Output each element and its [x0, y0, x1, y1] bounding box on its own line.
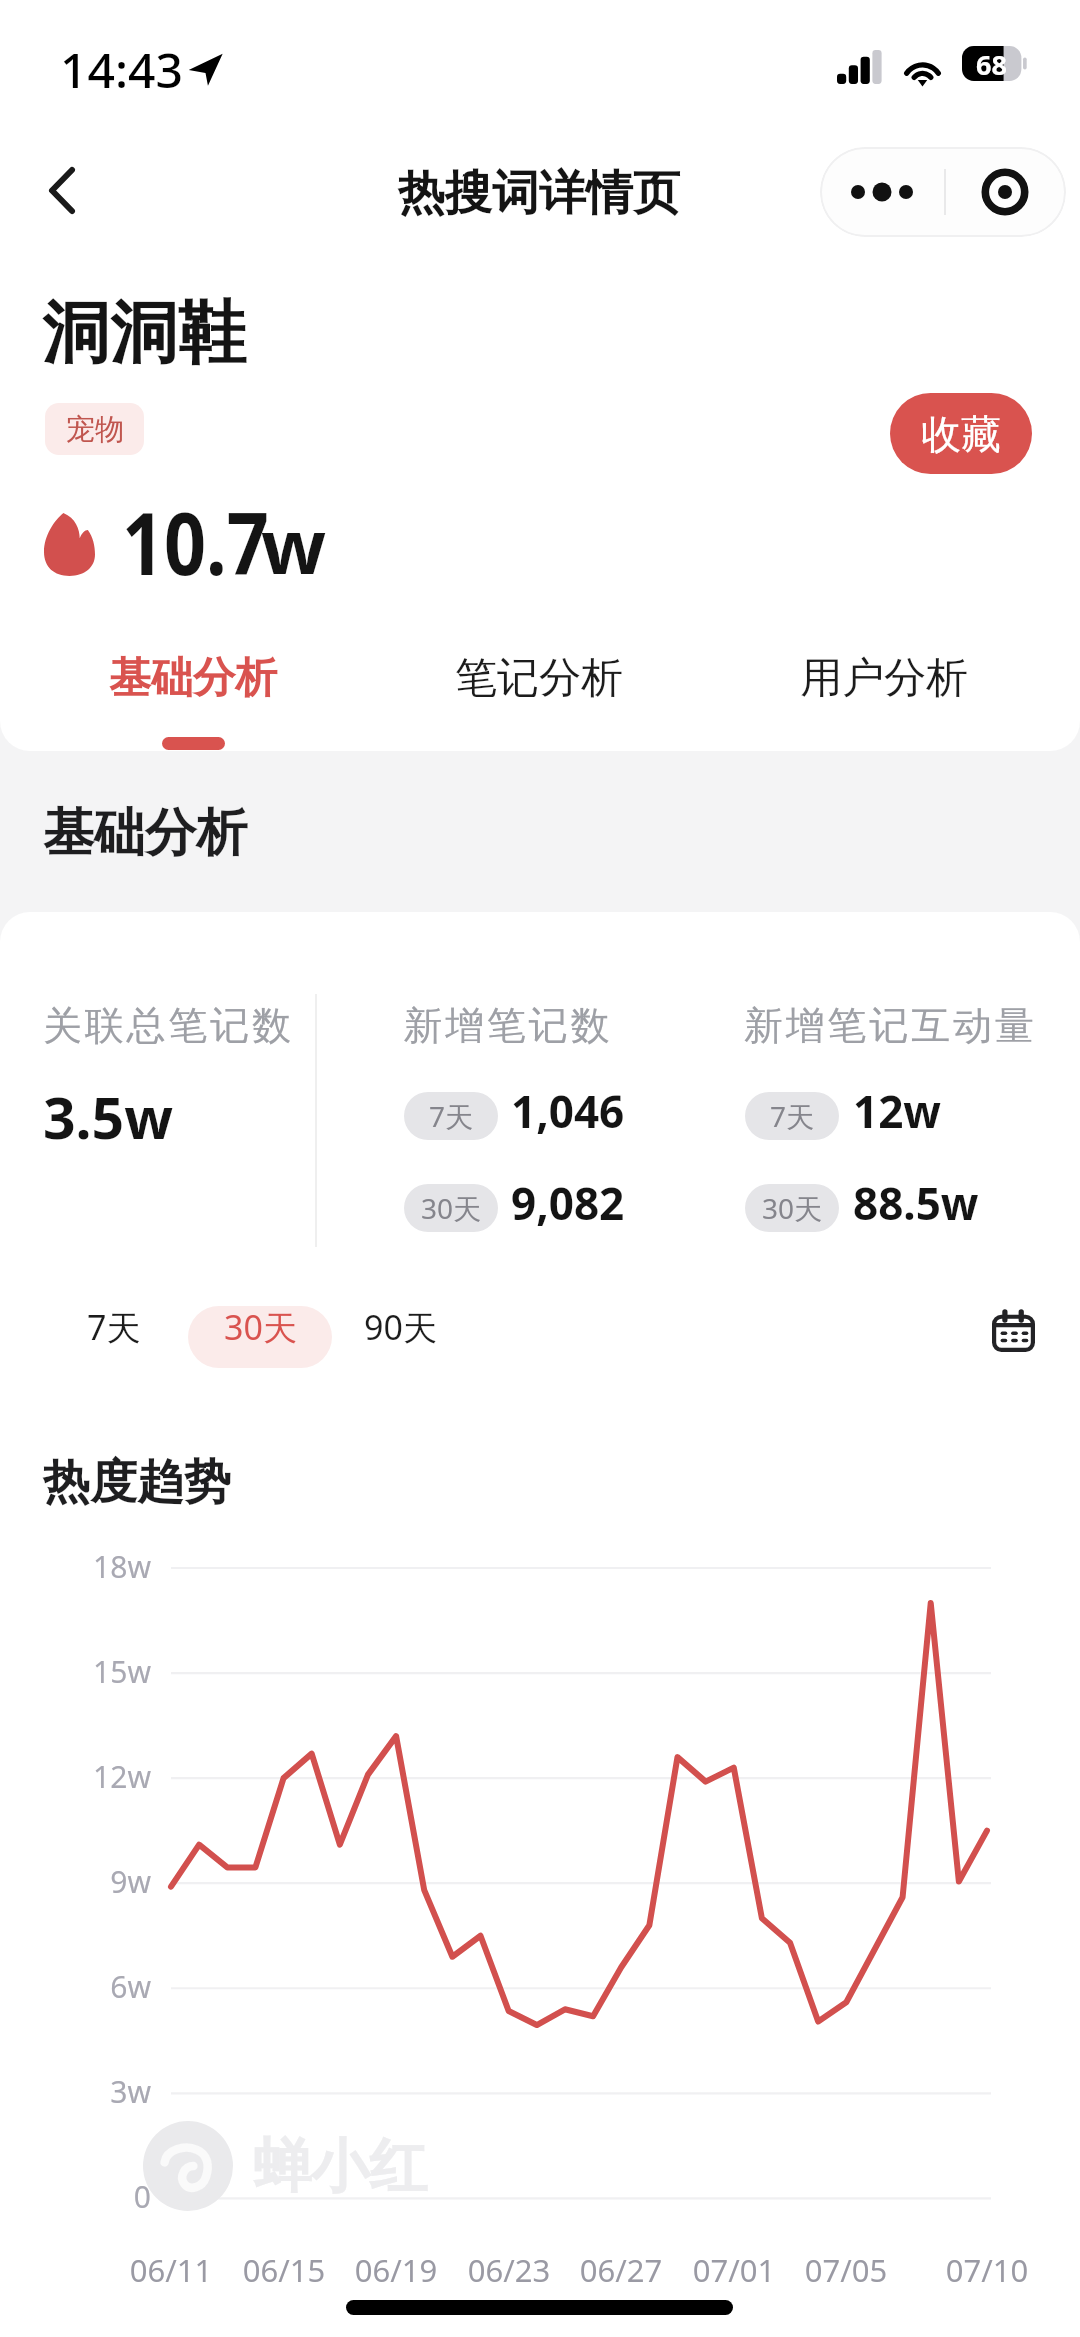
- staticText: 用户分析: [800, 652, 968, 705]
- staticText: 6w: [53, 1966, 151, 2007]
- staticText: 热度趋势: [43, 1453, 231, 1512]
- staticText: 90天: [364, 1304, 437, 1350]
- staticText: 7天: [429, 1097, 474, 1135]
- button[interactable]: 7天: [72, 1297, 156, 1359]
- staticText: 0: [53, 2176, 151, 2217]
- staticText: 9w: [53, 1861, 151, 1902]
- button[interactable]: 用户分析: [711, 652, 1056, 751]
- staticText: 12w: [853, 1081, 941, 1141]
- staticText: 06/19: [316, 2249, 476, 2291]
- staticText: w: [261, 493, 327, 597]
- staticText: 基础分析: [43, 801, 247, 865]
- button[interactable]: Calendar: [977, 1295, 1049, 1367]
- staticText: 1,046: [511, 1081, 625, 1141]
- staticText: 12w: [53, 1756, 151, 1797]
- button[interactable]: 30天: [188, 1306, 332, 1368]
- staticText: 30天: [762, 1189, 823, 1227]
- staticText: 基础分析: [109, 652, 277, 705]
- staticText: 88.5w: [853, 1173, 979, 1233]
- staticText: 07/10: [907, 2249, 1067, 2291]
- staticText: 30天: [421, 1189, 482, 1227]
- staticText: 07/05: [766, 2249, 926, 2291]
- staticText: 7天: [770, 1097, 815, 1135]
- staticText: 洞洞鞋: [42, 291, 246, 377]
- staticText: 关联总笔记数: [43, 1001, 294, 1050]
- button[interactable]: Back: [20, 148, 104, 232]
- button[interactable]: 笔记分析: [366, 652, 711, 751]
- staticText: 新增笔记数: [402, 1001, 611, 1050]
- staticText: 30天: [224, 1306, 297, 1350]
- staticText: 06/11: [91, 2249, 251, 2291]
- staticText: 15w: [53, 1651, 151, 1692]
- staticText: 新增笔记互动量: [744, 1001, 1037, 1050]
- staticText: 06/23: [429, 2249, 589, 2291]
- staticText: 68: [976, 46, 1007, 81]
- button[interactable]: 90天: [347, 1297, 453, 1359]
- staticText: 3w: [53, 2071, 151, 2112]
- staticText: 7天: [87, 1304, 141, 1350]
- staticText: 热搜词详情页: [398, 164, 680, 223]
- staticText: 18w: [53, 1546, 151, 1587]
- button[interactable]: Close: [943, 147, 1066, 237]
- staticText: 宠物: [66, 411, 124, 448]
- staticText: 14:43: [60, 37, 183, 102]
- staticText: 9,082: [511, 1173, 625, 1233]
- staticText: 10.7: [122, 483, 269, 600]
- staticText: 06/15: [204, 2249, 364, 2291]
- staticText: 蝉小红: [253, 2130, 427, 2203]
- button[interactable]: More: [820, 147, 943, 237]
- staticText: 06/27: [541, 2249, 701, 2291]
- button[interactable]: 基础分析: [20, 652, 366, 751]
- staticText: 笔记分析: [455, 652, 623, 705]
- button[interactable]: 收藏: [890, 393, 1032, 474]
- staticText: 收藏: [921, 409, 1001, 459]
- staticText: 3.5w: [43, 1078, 174, 1156]
- staticText: 07/01: [654, 2249, 814, 2291]
